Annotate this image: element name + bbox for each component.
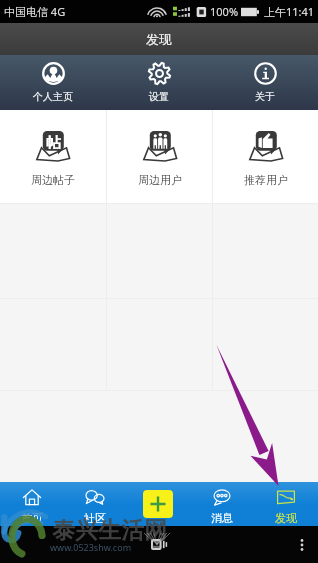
staticText: 个人主页: [33, 90, 73, 103]
other: Recents: [151, 538, 168, 551]
staticText: 首页: [21, 511, 43, 525]
button[interactable]: 消息: [190, 482, 254, 526]
button[interactable]: 发布: [126, 482, 190, 526]
staticText: 中国电信 4G: [4, 4, 66, 19]
button[interactable]: 首页: [0, 482, 63, 526]
staticText: 推荐用户: [244, 173, 288, 187]
staticText: 社区: [84, 511, 106, 525]
staticText: 设置: [149, 90, 169, 103]
staticText: 帖: [46, 134, 61, 149]
button[interactable]: 个人主页: [0, 55, 106, 110]
staticText: 发现: [275, 511, 297, 525]
button[interactable]: 推荐用户: [213, 110, 318, 203]
button[interactable]: 社区: [63, 482, 126, 526]
staticText: 周边帖子: [31, 173, 75, 187]
button[interactable]: 设置: [106, 55, 212, 110]
staticText: 泰兴生活网: [52, 516, 167, 545]
staticText: 发现: [146, 31, 172, 47]
staticText: 关于: [255, 90, 275, 103]
staticText: 上午11:41: [264, 4, 315, 19]
staticText: 消息: [211, 511, 233, 525]
button[interactable]: 关于: [212, 55, 318, 110]
button[interactable]: 发现: [254, 482, 318, 526]
staticText: www.0523shw.com: [50, 541, 132, 553]
staticText: 周边用户: [138, 173, 182, 187]
button[interactable]: 周边用户: [107, 110, 212, 203]
staticText: 100%: [210, 4, 239, 19]
other: Menu: [300, 538, 304, 552]
button[interactable]: 帖: [0, 110, 106, 203]
